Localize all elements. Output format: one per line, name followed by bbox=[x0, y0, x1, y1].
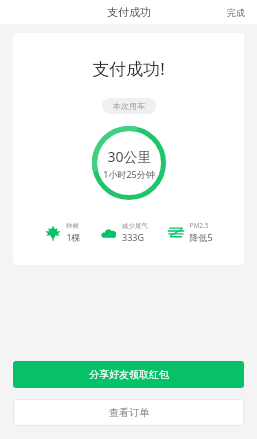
staticText: 降低5 bbox=[189, 231, 213, 243]
staticText: 分享好友领取红包 bbox=[89, 368, 169, 381]
staticText: 种树 bbox=[66, 222, 79, 230]
staticText: PM2.5 bbox=[189, 221, 209, 230]
staticText: 支付成功 bbox=[107, 5, 151, 19]
staticText: 30公里 bbox=[107, 147, 152, 166]
staticText: 本次用车 bbox=[113, 101, 145, 111]
staticText: 完成 bbox=[227, 7, 245, 18]
staticText: 333G bbox=[122, 231, 144, 243]
button[interactable]: 分享好友领取红包 bbox=[13, 361, 244, 388]
staticText: 1小时25分钟 bbox=[103, 168, 155, 180]
staticText: 1棵 bbox=[66, 231, 81, 243]
button[interactable]: 完成 bbox=[215, 3, 257, 22]
staticText: 查看订单 bbox=[109, 406, 149, 419]
staticText: 减少尾气 bbox=[122, 222, 148, 230]
button[interactable]: 查看订单 bbox=[13, 399, 244, 426]
staticText: 支付成功! bbox=[92, 57, 165, 80]
